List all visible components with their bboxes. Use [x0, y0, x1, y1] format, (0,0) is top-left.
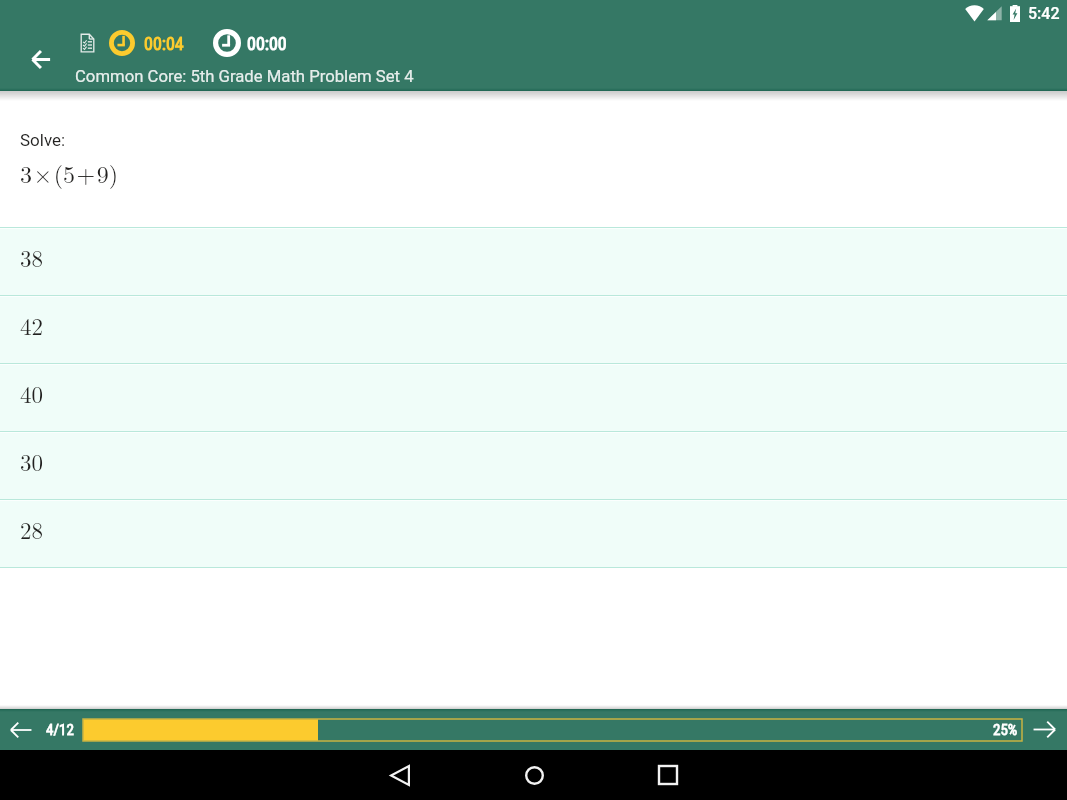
other: Progress 25 percent — [83, 719, 1022, 741]
button[interactable]: 30 — [0, 433, 1067, 499]
button[interactable]: Recent apps — [601, 750, 735, 800]
button[interactable]: Back — [22, 40, 60, 78]
button[interactable]: 42 — [0, 297, 1067, 363]
staticText: 38 — [20, 241, 43, 274]
staticText: 40 — [20, 377, 43, 410]
button[interactable]: 38 — [0, 229, 1067, 295]
staticText: 42 — [20, 309, 43, 342]
staticText: 00:00 — [247, 33, 287, 54]
staticText: 3 × (5 + 9) — [20, 156, 119, 190]
staticText: Common Core: 5th Grade Math Problem Set … — [75, 67, 414, 87]
staticText: 00:04 — [144, 33, 184, 54]
button[interactable]: 28 — [0, 501, 1067, 567]
button[interactable]: Home — [467, 750, 601, 800]
staticText: Solve: — [20, 130, 66, 150]
button[interactable]: Back — [333, 750, 467, 800]
button[interactable]: 40 — [0, 365, 1067, 431]
button[interactable]: Problem set details — [80, 33, 95, 53]
button[interactable]: 00:00 — [213, 29, 287, 57]
button[interactable]: 00:04 — [109, 30, 184, 56]
staticText: 30 — [20, 445, 43, 478]
button[interactable]: Previous question — [0, 709, 41, 750]
button[interactable]: Next question — [1022, 709, 1067, 750]
staticText: 28 — [20, 513, 43, 546]
staticText: 5:42 — [1028, 4, 1060, 23]
staticText: 4/12 — [46, 721, 74, 739]
staticText: 25% — [993, 721, 1018, 739]
